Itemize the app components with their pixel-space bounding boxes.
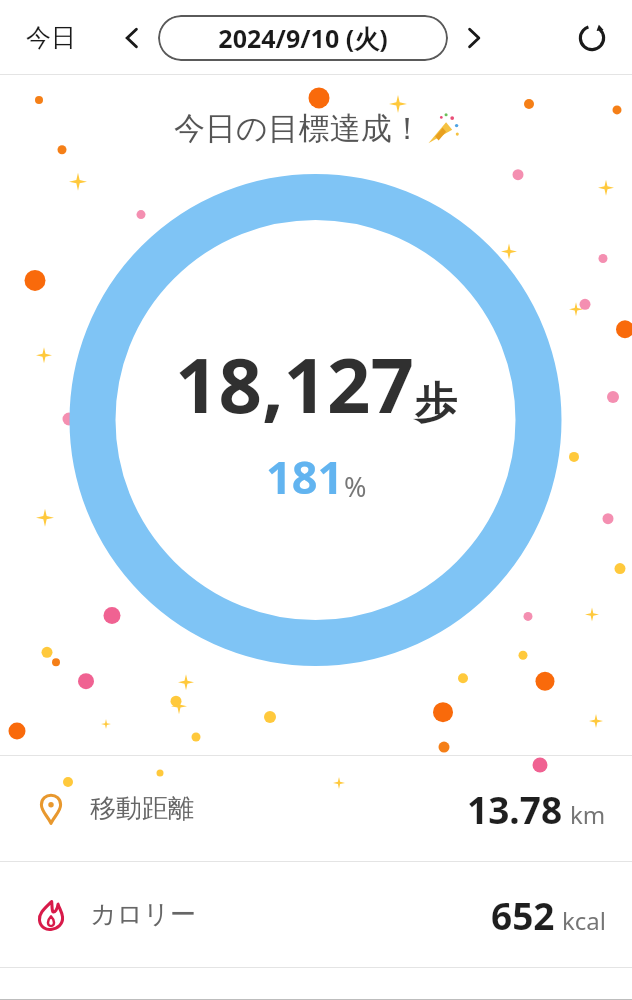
button[interactable]: カロリー [0,862,632,967]
staticText: 歩 [415,377,457,430]
button[interactable]: 今日 [16,14,86,61]
button[interactable]: 更新 [568,14,616,62]
staticText: 181 [266,446,344,507]
button[interactable]: 2024/9/10 (火) [158,15,448,61]
button[interactable]: 前の日 [110,16,154,60]
staticText: 13.78 [467,784,563,834]
staticText: 今日の目標達成！ [174,109,423,148]
staticText: カロリー [90,898,196,931]
staticText: km [570,798,606,831]
staticText: 2024/9/10 (火) [218,21,388,55]
staticText: 移動距離 [90,792,194,825]
staticText: 18,127 [175,332,415,436]
button[interactable]: 次の日 [452,16,496,60]
staticText: 今日 [26,22,76,53]
staticText: % [344,468,367,505]
staticText: 652 [491,890,555,940]
button[interactable]: 移動距離 [0,756,632,861]
staticText: kcal [562,904,606,937]
